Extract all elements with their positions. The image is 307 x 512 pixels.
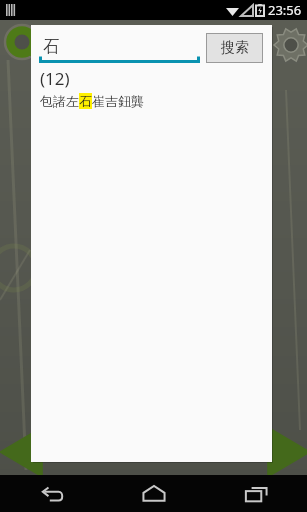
staticText: 包諸左 <box>40 93 79 109</box>
button[interactable]: Home <box>103 475 205 512</box>
staticText: 搜索 <box>221 39 249 57</box>
staticText: 石 <box>43 37 59 57</box>
staticText: (12) <box>40 67 70 90</box>
staticText: 23:56 <box>268 1 302 19</box>
button[interactable]: 包諸左 <box>40 93 263 109</box>
button[interactable]: Recent apps <box>205 475 307 512</box>
button[interactable]: 石 <box>39 32 200 63</box>
staticText: 石 <box>79 93 92 109</box>
button[interactable]: Back <box>0 475 103 512</box>
staticText: 崔吉鈕龔 <box>92 93 144 109</box>
button[interactable]: 搜索 <box>206 33 263 63</box>
